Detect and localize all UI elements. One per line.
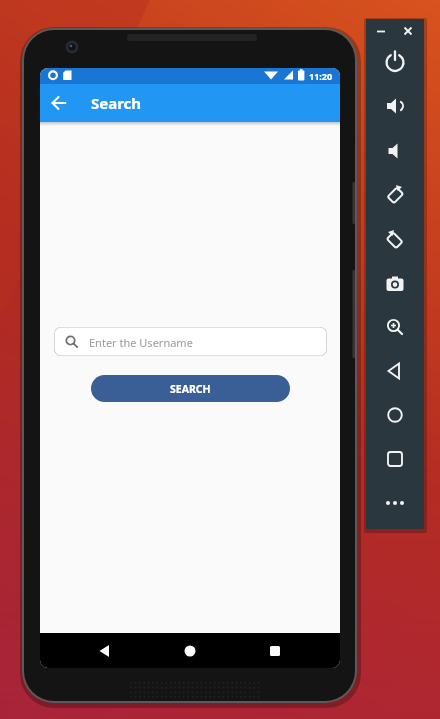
button[interactable] xyxy=(93,639,117,663)
button[interactable] xyxy=(383,183,407,207)
button[interactable] xyxy=(383,359,407,383)
button[interactable] xyxy=(383,447,407,471)
button[interactable]: SEARCH xyxy=(91,375,290,402)
button[interactable] xyxy=(383,50,407,74)
staticText: 11:20 xyxy=(309,70,333,82)
button[interactable] xyxy=(383,491,407,515)
button[interactable] xyxy=(383,228,407,252)
button[interactable] xyxy=(383,272,407,296)
staticText: SEARCH xyxy=(170,382,211,396)
button[interactable] xyxy=(383,139,407,163)
button[interactable] xyxy=(178,639,202,663)
button[interactable] xyxy=(263,639,287,663)
button[interactable] xyxy=(373,23,389,39)
button[interactable] xyxy=(48,92,70,114)
button[interactable] xyxy=(400,23,416,39)
staticText: Enter the Username xyxy=(89,335,193,350)
staticText: Search xyxy=(91,93,142,113)
button[interactable]: Enter the Username xyxy=(54,327,327,356)
button[interactable] xyxy=(383,94,407,118)
button[interactable] xyxy=(383,315,407,339)
button[interactable] xyxy=(383,403,407,427)
